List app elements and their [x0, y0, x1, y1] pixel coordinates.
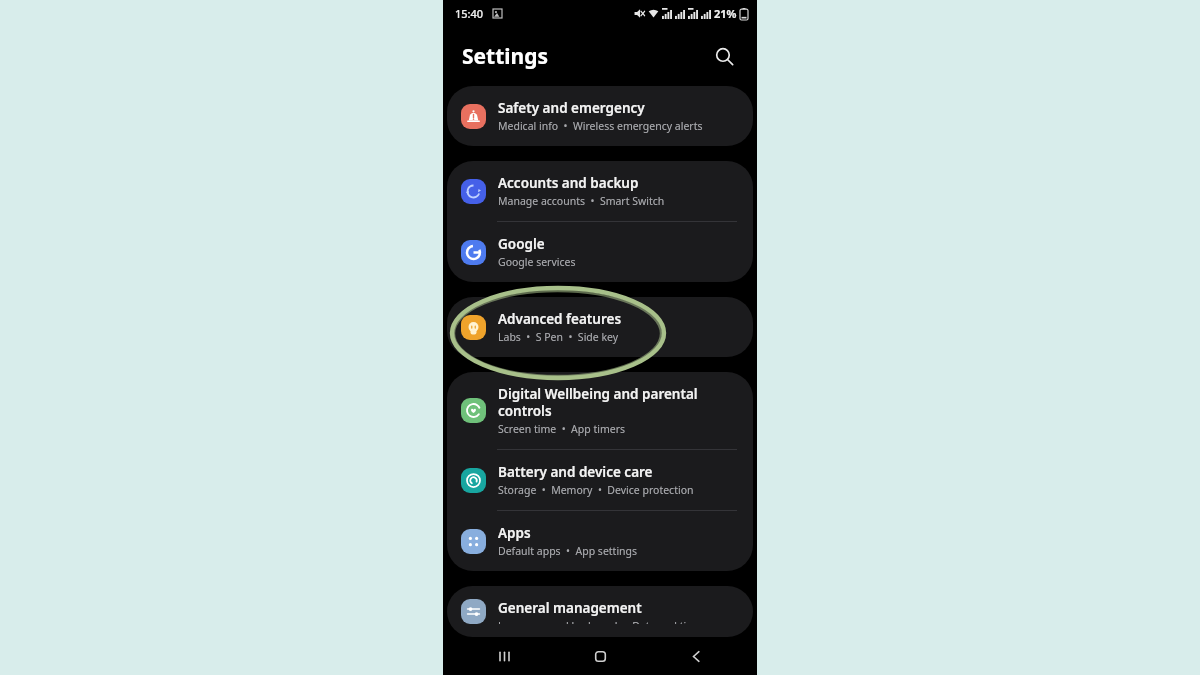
- staticText: Accounts and backup: [498, 174, 639, 192]
- staticText: 15:40: [455, 6, 484, 21]
- staticText: Manage accounts • Smart Switch: [498, 194, 665, 208]
- staticText: Default apps • App settings: [498, 544, 638, 558]
- staticText: General management: [498, 599, 642, 617]
- staticText: Safety and emergency: [498, 99, 645, 117]
- staticText: Apps: [498, 524, 531, 542]
- staticText: Medical info • Wireless emergency alerts: [498, 119, 703, 133]
- button[interactable]: Battery and device care: [447, 450, 753, 510]
- staticText: Labs • S Pen • Side key: [498, 330, 619, 344]
- button[interactable]: Recent apps: [469, 637, 539, 675]
- staticText: Screen time • App timers: [498, 422, 626, 436]
- button[interactable]: General management: [447, 586, 753, 637]
- button[interactable]: Safety and emergency: [447, 86, 753, 146]
- button[interactable]: Search settings: [707, 39, 741, 73]
- staticText: Google services: [498, 255, 576, 269]
- staticText: Settings: [462, 42, 549, 71]
- button[interactable]: Back: [661, 637, 731, 675]
- button[interactable]: Home: [565, 637, 635, 675]
- staticText: Battery and device care: [498, 463, 653, 481]
- button[interactable]: Apps: [447, 511, 753, 571]
- staticText: Advanced features: [498, 310, 622, 328]
- button[interactable]: Digital Wellbeing and parental controls: [447, 372, 753, 449]
- staticText: Digital Wellbeing and parental controls: [498, 385, 739, 420]
- staticText: 21%: [714, 6, 737, 21]
- button[interactable]: Accounts and backup: [447, 161, 753, 221]
- staticText: Google: [498, 235, 545, 253]
- button[interactable]: Advanced features: [447, 297, 753, 357]
- staticText: Storage • Memory • Device protection: [498, 483, 694, 497]
- button[interactable]: Google: [447, 222, 753, 282]
- staticText: Language and keyboard • Date and time: [498, 619, 703, 624]
